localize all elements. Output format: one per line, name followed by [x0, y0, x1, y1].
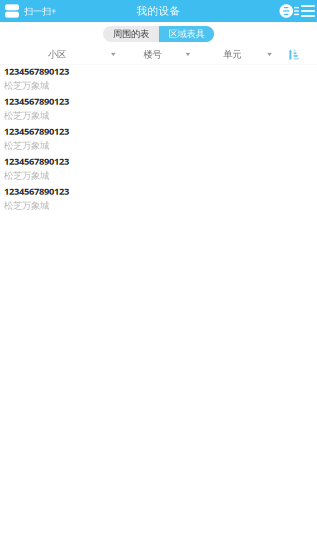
staticText: 楼号	[144, 49, 162, 60]
staticText: 松芝万象城	[4, 140, 49, 151]
staticText: 我的设备	[136, 4, 180, 17]
button[interactable]: 1234567890123	[0, 184, 317, 214]
staticText: 松芝万象城	[4, 110, 49, 121]
staticText: 单元	[223, 49, 241, 60]
button[interactable]: 1234567890123	[0, 154, 317, 184]
button[interactable]: 小区	[48, 45, 116, 64]
staticText: 1234567890123	[4, 185, 69, 197]
button[interactable]: 单元	[223, 45, 272, 64]
staticText: 松芝万象城	[4, 80, 49, 91]
staticText: 松芝万象城	[4, 200, 49, 211]
button[interactable]: 扫一扫+	[0, 0, 56, 22]
button[interactable]: Filter	[279, 0, 299, 22]
staticText: 1234567890123	[4, 95, 69, 107]
button[interactable]: 周围的表	[103, 26, 159, 42]
staticText: 扫一扫+	[24, 5, 56, 17]
staticText: 松芝万象城	[4, 170, 49, 181]
button[interactable]: Sort	[289, 49, 299, 59]
staticText: 周围的表	[113, 28, 149, 40]
staticText: 1234567890123	[4, 65, 69, 77]
button[interactable]: 1234567890123	[0, 124, 317, 154]
button[interactable]: 1234567890123	[0, 64, 317, 94]
button[interactable]: 楼号	[144, 45, 190, 64]
staticText: 1234567890123	[4, 125, 69, 137]
staticText: 1234567890123	[4, 155, 69, 167]
staticText: 小区	[48, 49, 66, 60]
button[interactable]: 1234567890123	[0, 94, 317, 124]
button[interactable]: 区域表具	[159, 26, 214, 42]
button[interactable]: Menu	[299, 0, 317, 22]
staticText: 区域表具	[168, 28, 204, 40]
